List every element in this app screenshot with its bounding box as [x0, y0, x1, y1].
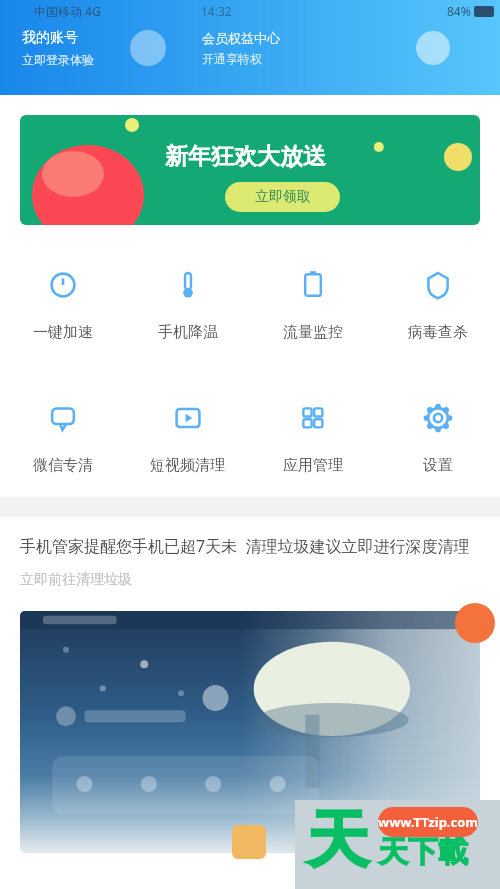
- button[interactable]: 立即领取: [225, 182, 340, 212]
- button[interactable]: Messages: [416, 31, 450, 65]
- button[interactable]: 微信专清: [0, 403, 125, 475]
- staticText: 84%: [447, 3, 471, 19]
- staticText: 微信专清: [33, 456, 93, 475]
- button[interactable]: 会员权益中心: [202, 30, 280, 66]
- button[interactable]: Profile: [130, 30, 166, 66]
- staticText: 病毒查杀: [408, 323, 468, 342]
- staticText: 会员权益中心: [202, 30, 280, 46]
- staticText: 短视频清理: [150, 456, 225, 475]
- button[interactable]: 立即前往清理垃圾: [20, 571, 132, 589]
- button[interactable]: 流量监控: [250, 270, 375, 342]
- staticText: www.TTzip.com: [378, 813, 478, 831]
- staticText: 新年狂欢大放送: [165, 142, 326, 171]
- staticText: 我的账号: [22, 29, 78, 47]
- button[interactable]: 我的账号: [22, 29, 94, 67]
- button[interactable]: 一键加速: [0, 270, 125, 342]
- staticText: 手机降温: [158, 323, 218, 342]
- button[interactable]: Weather app preview: [20, 611, 480, 853]
- staticText: 天: [307, 801, 369, 879]
- staticText: 手机管家提醒您手机已超7天未 清理垃圾建议立即进行深度清理: [20, 535, 470, 557]
- staticText: 天下載: [378, 833, 468, 871]
- staticText: 中国移动 4G: [34, 3, 101, 19]
- staticText: 一键加速: [33, 323, 93, 342]
- staticText: 流量监控: [283, 323, 343, 342]
- button[interactable]: 短视频清理: [125, 403, 250, 475]
- staticText: 立即领取: [255, 188, 311, 206]
- button[interactable]: 应用管理: [250, 403, 375, 475]
- button[interactable]: Close ad: [455, 603, 495, 643]
- staticText: 立即登录体验: [22, 52, 94, 67]
- staticText: 应用管理: [283, 456, 343, 475]
- staticText: 设置: [423, 456, 453, 475]
- button[interactable]: 病毒查杀: [375, 270, 500, 342]
- staticText: 14:32: [201, 3, 232, 19]
- button[interactable]: 设置: [375, 403, 500, 475]
- staticText: 开通享特权: [202, 51, 262, 66]
- button[interactable]: 手机降温: [125, 270, 250, 342]
- button[interactable]: Promotion banner: [20, 115, 480, 225]
